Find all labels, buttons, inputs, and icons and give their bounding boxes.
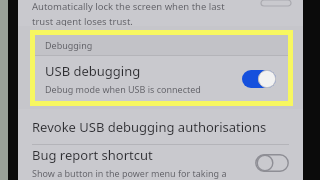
button[interactable]: USB debugging toggle, on [242,70,276,88]
staticText: Bug report shortcut [32,146,153,164]
button[interactable]: Revoke USB debugging authorisations [18,109,303,145]
staticText: trust agent loses trust. [32,15,133,26]
staticText: Debugging [45,39,93,51]
staticText: Debug mode when USB is connected [45,83,201,95]
button[interactable]: Bug report shortcut toggle, off [255,154,289,172]
staticText: Revoke USB debugging authorisations [32,118,267,136]
button[interactable]: USB debugging [35,56,288,101]
button[interactable]: Bug report shortcut [18,145,303,180]
staticText: USB debugging [45,62,141,80]
staticText: Show a button in the power menu for taki… [32,167,227,179]
button[interactable]: Automatically lock the screen when the l… [18,0,303,26]
staticText: Automatically lock the screen when the l… [32,0,225,13]
